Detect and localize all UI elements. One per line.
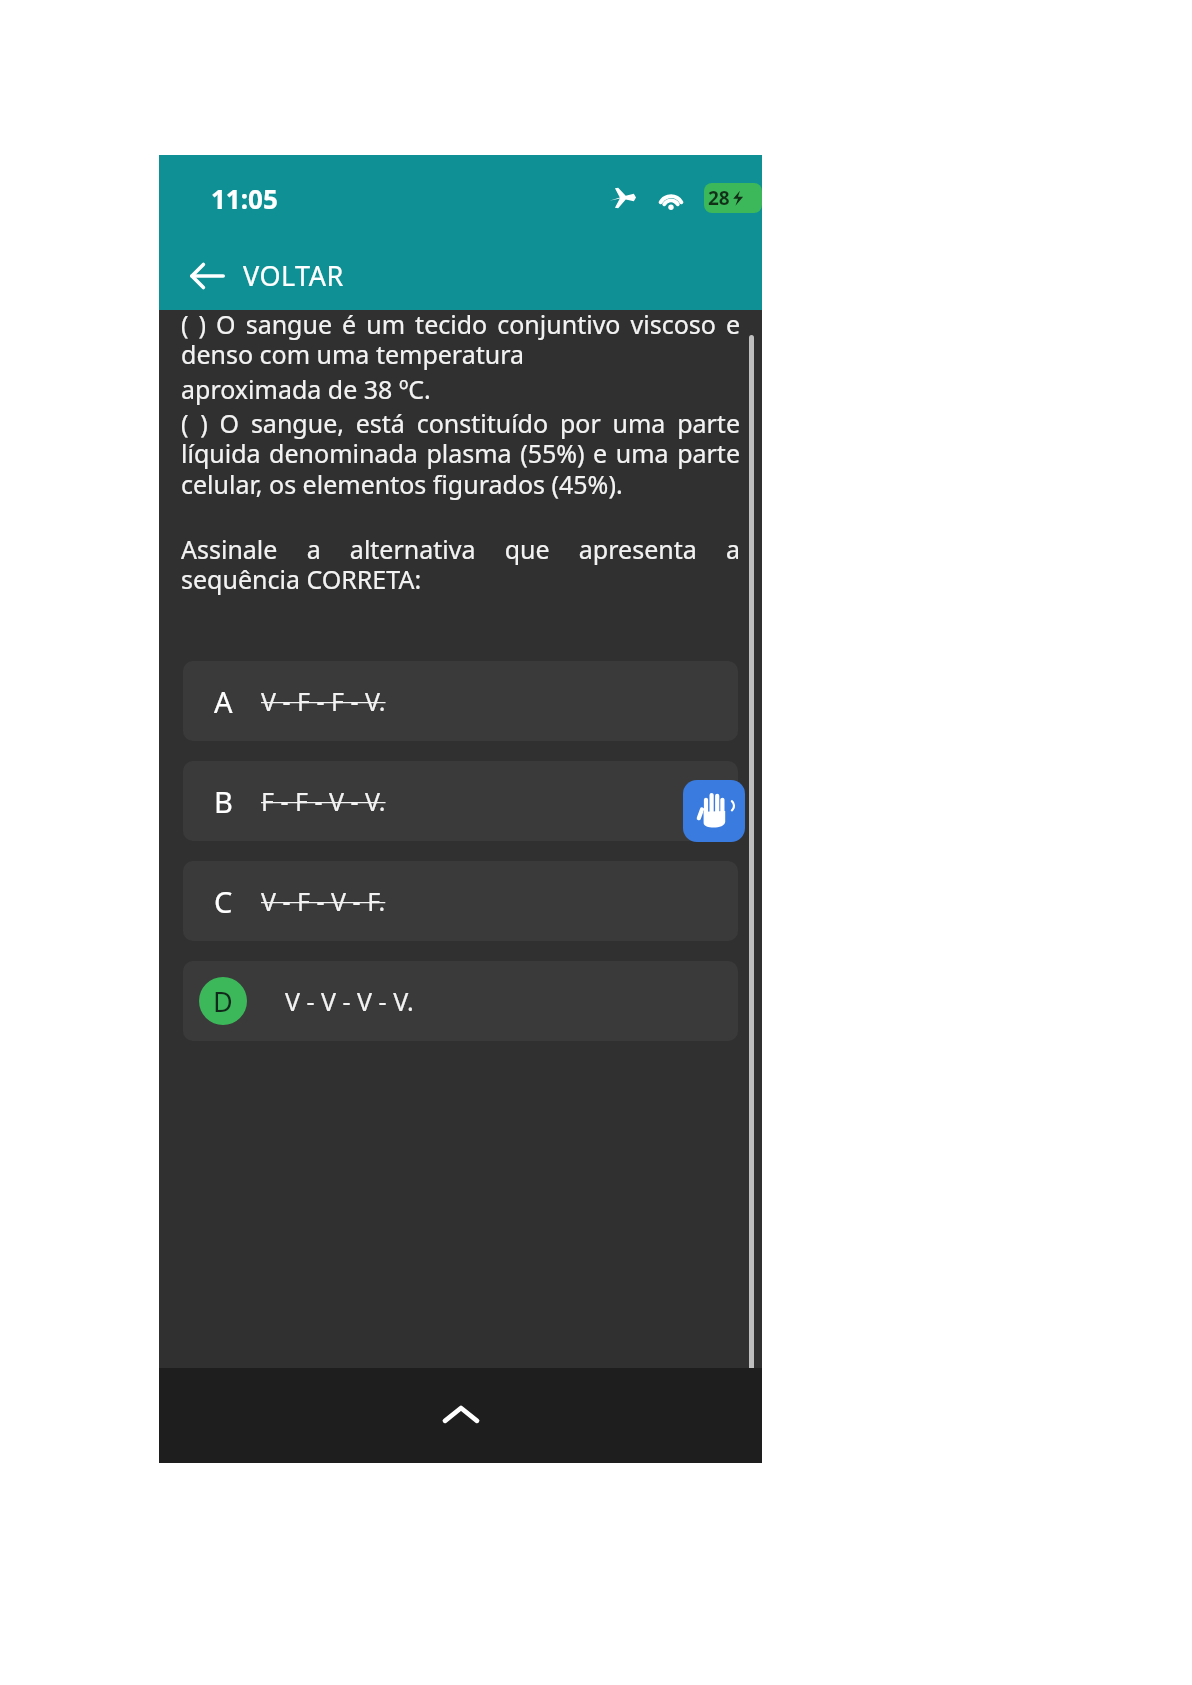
staticText: V - V - V - V. xyxy=(285,984,414,1018)
button[interactable]: A xyxy=(183,661,738,741)
staticText: V - F - F - V. xyxy=(261,684,386,718)
button[interactable]: C xyxy=(183,861,738,941)
staticText: Assinale a alternativa que apresenta a s… xyxy=(181,532,740,597)
staticText: D xyxy=(213,983,233,1020)
button[interactable]: D xyxy=(183,961,738,1041)
staticText: 11:05 xyxy=(211,181,278,216)
button[interactable]: Expand navigation xyxy=(423,1378,499,1454)
staticText: V - F - V - F. xyxy=(261,884,386,918)
staticText: F - F - V - V. xyxy=(261,784,386,818)
staticText: aproximada de 38 ºC. xyxy=(181,372,431,406)
staticText: C xyxy=(214,882,233,921)
staticText: B xyxy=(214,782,233,821)
staticText: ( ) O sangue, está constituído por uma p… xyxy=(181,406,740,502)
staticText: ( ) O sangue é um tecido conjuntivo visc… xyxy=(181,307,740,372)
button[interactable]: VLibras sign language translator xyxy=(683,780,745,842)
staticText: VOLTAR xyxy=(243,257,344,294)
staticText: A xyxy=(214,682,233,721)
button[interactable]: VOLTAR xyxy=(159,241,762,310)
staticText: 28 xyxy=(708,185,730,211)
button[interactable]: B xyxy=(183,761,738,841)
